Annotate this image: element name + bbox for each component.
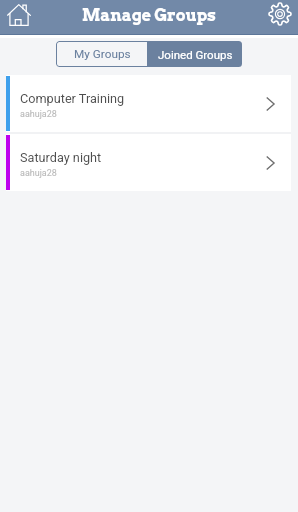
staticText: aahuja28 — [20, 109, 57, 120]
staticText: My Groups — [74, 47, 131, 61]
staticText: Computer Training — [20, 91, 125, 106]
staticText: Saturday night — [20, 150, 102, 165]
staticText: Manage Groups — [82, 6, 216, 25]
button[interactable]: Settings — [267, 1, 293, 27]
button[interactable]: Computer Training — [6, 75, 291, 132]
staticText: Joined Groups — [158, 48, 233, 61]
button[interactable]: Joined Groups — [148, 41, 242, 67]
button[interactable]: Home — [5, 1, 33, 29]
button[interactable]: Saturday night — [6, 134, 291, 191]
button[interactable]: My Groups — [56, 41, 148, 67]
staticText: aahuja28 — [20, 168, 57, 179]
